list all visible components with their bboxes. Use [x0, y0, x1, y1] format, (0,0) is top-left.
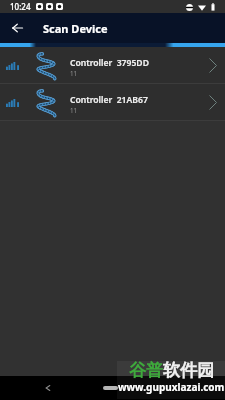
staticText: www.gupuxlazai.com	[118, 380, 225, 394]
staticText: 谷普	[129, 360, 163, 381]
button[interactable]: Home	[103, 386, 118, 390]
staticText: 软件园	[163, 360, 214, 381]
staticText: 10:24	[10, 1, 31, 12]
staticText: 11	[70, 106, 78, 114]
button[interactable]: Controller 21AB67	[0, 84, 225, 120]
staticText: Scan Device	[43, 21, 108, 36]
staticText: 11	[70, 69, 78, 77]
button[interactable]: Controller 3795DD	[0, 47, 225, 83]
staticText: Controller 3795DD	[70, 57, 149, 69]
button[interactable]: Back	[3, 14, 31, 42]
staticText: Controller 21AB67	[70, 94, 148, 106]
button[interactable]: Back	[45, 385, 51, 391]
